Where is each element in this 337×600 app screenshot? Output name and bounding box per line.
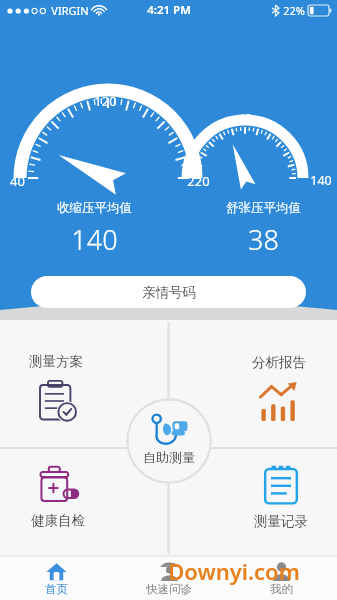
staticText: 38: [248, 221, 279, 258]
staticText: 分析报告: [252, 354, 306, 371]
staticText: VIRGIN: [51, 3, 89, 18]
button[interactable]: 测量方案: [0, 322, 168, 448]
staticText: 舒张压平均值: [226, 200, 301, 216]
button[interactable]: 我的: [225, 556, 337, 600]
staticText: Downyi.com: [168, 556, 300, 586]
button[interactable]: 自助测量: [126, 398, 212, 484]
staticText: 220: [187, 172, 210, 190]
staticText: 亲情号码: [142, 284, 196, 301]
staticText: 22%: [283, 3, 305, 18]
button[interactable]: 健康自检: [0, 448, 168, 554]
staticText: 首页: [45, 582, 68, 596]
staticText: 收缩压平均值: [57, 200, 132, 216]
staticText: 40: [10, 172, 25, 190]
staticText: 120: [94, 92, 117, 110]
button[interactable]: 首页: [0, 556, 113, 600]
staticText: 4:21 PM: [147, 2, 191, 18]
button[interactable]: 亲情号码: [31, 276, 306, 308]
staticText: 测量记录: [254, 513, 308, 530]
staticText: 140: [71, 221, 118, 258]
button[interactable]: 快速问诊: [113, 556, 225, 600]
staticText: 自助测量: [143, 449, 195, 465]
button[interactable]: 分析报告: [168, 322, 337, 448]
staticText: 40: [238, 110, 252, 126]
staticText: 我的: [270, 582, 293, 596]
button[interactable]: 测量记录: [168, 448, 337, 554]
staticText: 140: [310, 172, 332, 189]
staticText: 测量方案: [29, 353, 83, 370]
staticText: 快速问诊: [146, 582, 192, 596]
staticText: 健康自检: [31, 512, 85, 529]
